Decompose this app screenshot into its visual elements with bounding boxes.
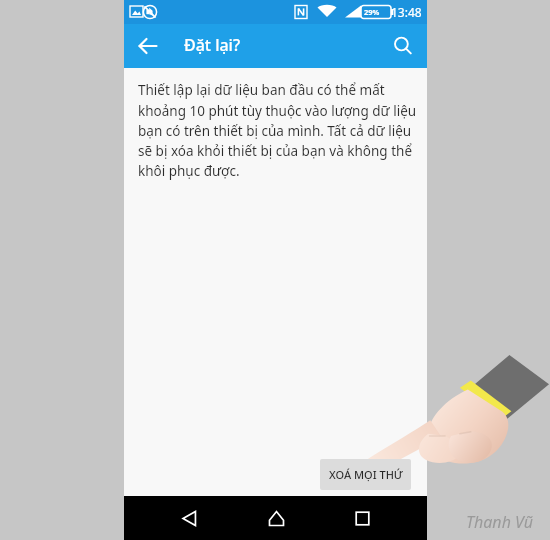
staticText: 13:48 bbox=[391, 4, 422, 20]
button[interactable]: Back bbox=[167, 496, 211, 540]
button[interactable]: Search bbox=[385, 28, 421, 64]
staticText: XOÁ MỌI THỨ bbox=[329, 467, 403, 482]
button[interactable]: XOÁ MỌI THỨ bbox=[320, 459, 411, 490]
staticText: 29% bbox=[364, 7, 380, 17]
staticText: Thiết lập lại dữ liệu ban đầu có thể mất… bbox=[138, 81, 417, 180]
button[interactable]: Back bbox=[130, 28, 166, 64]
button[interactable]: Home bbox=[254, 496, 298, 540]
staticText: Thanh Vũ bbox=[466, 511, 533, 533]
button[interactable]: Recent apps bbox=[340, 496, 384, 540]
staticText: Đặt lại? bbox=[184, 34, 241, 56]
